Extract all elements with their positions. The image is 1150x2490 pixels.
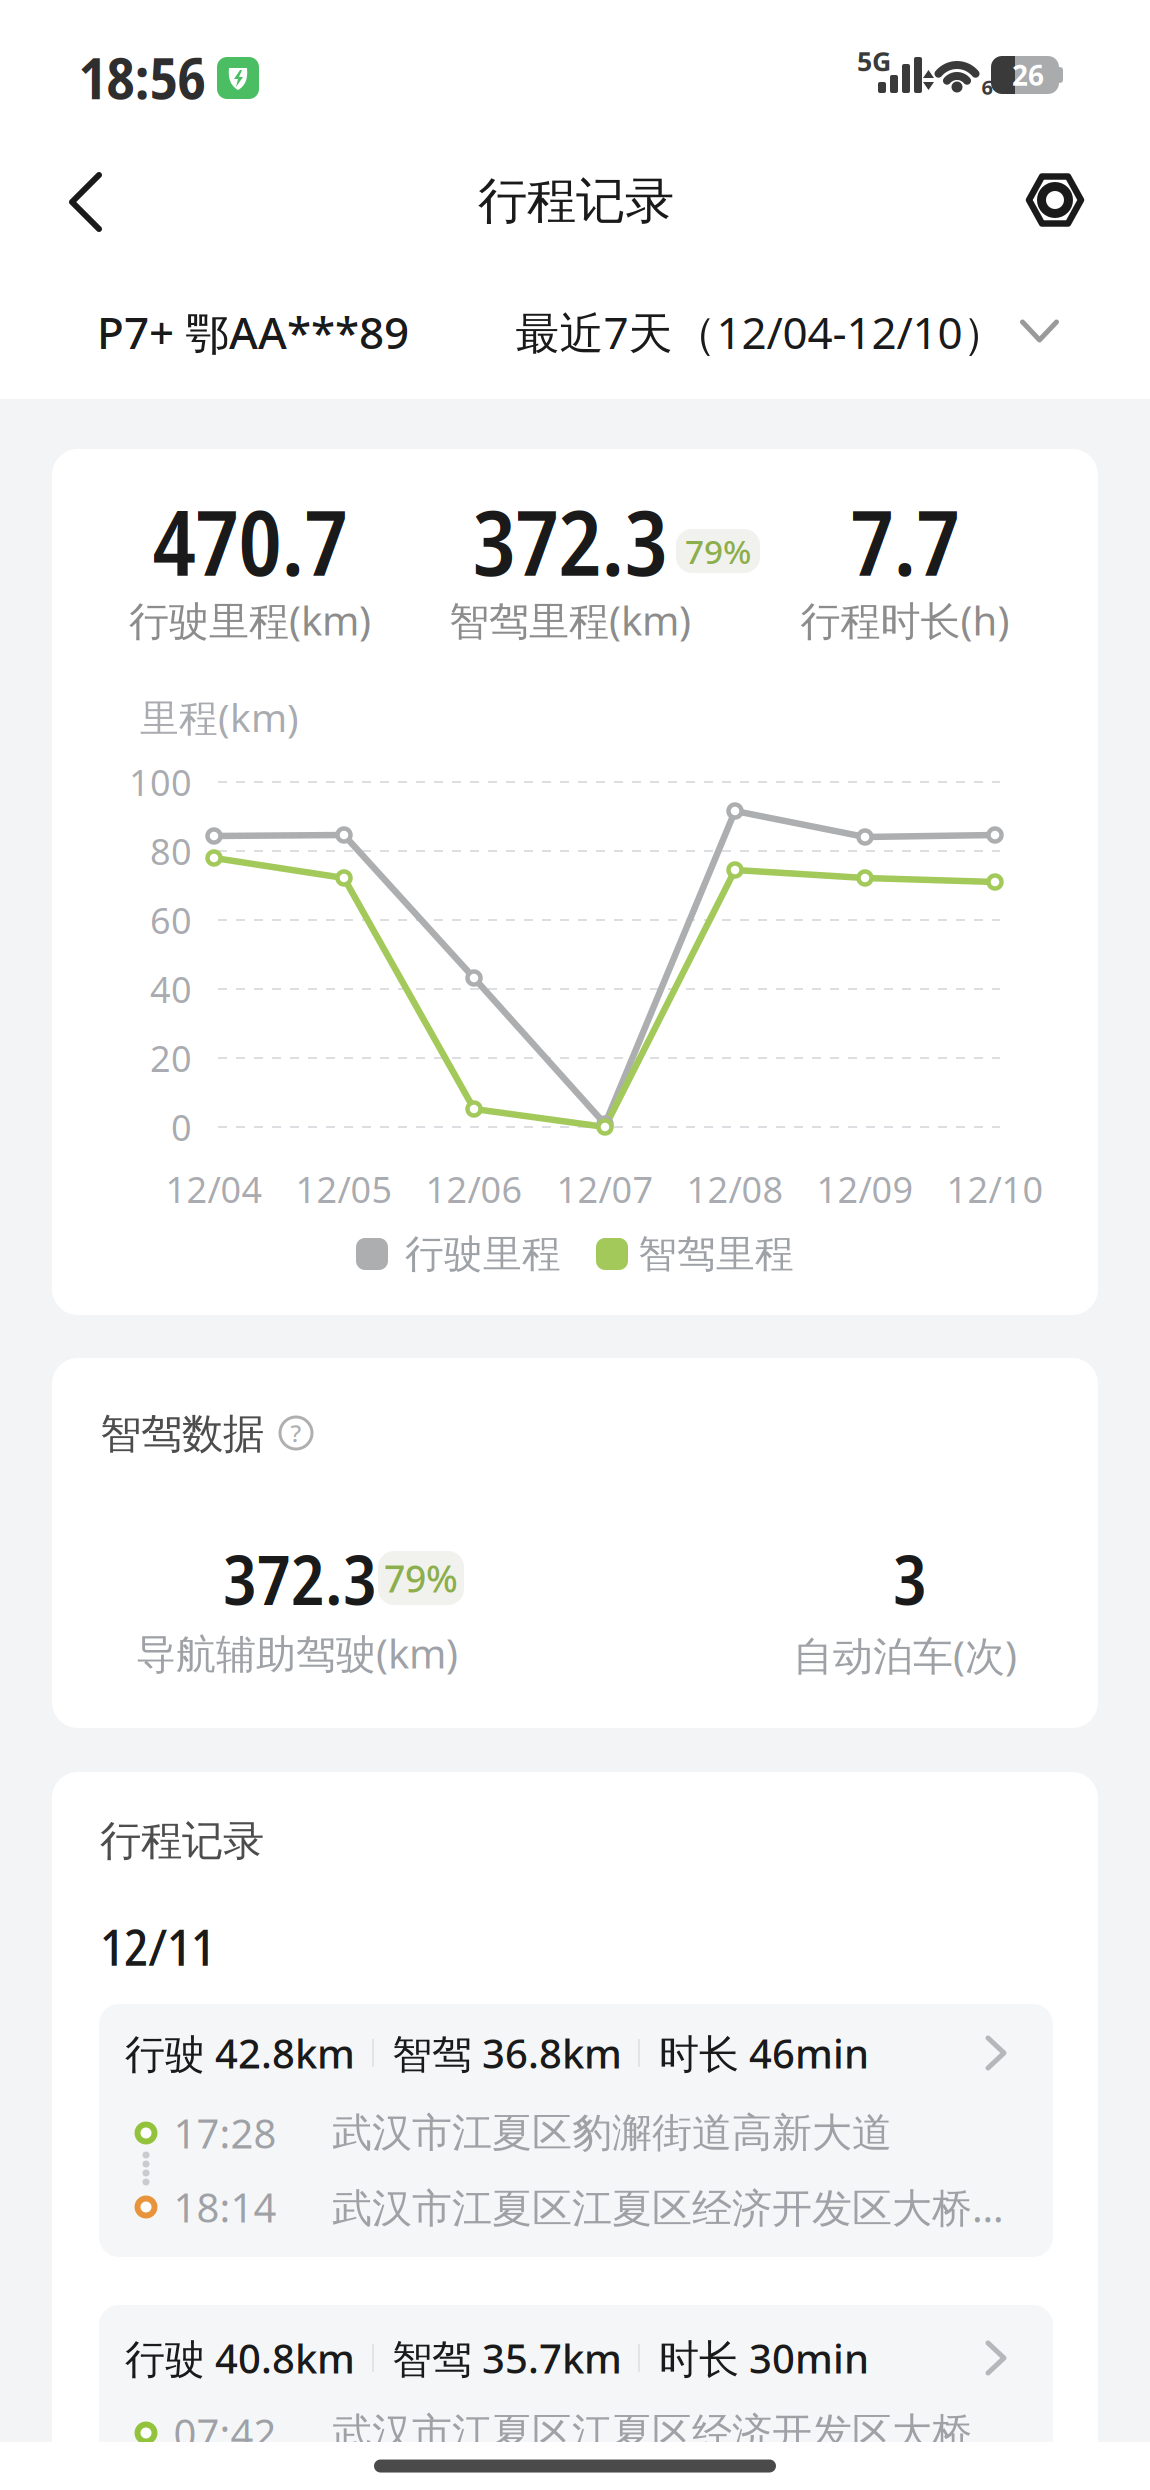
staticText: 100 bbox=[129, 758, 192, 806]
staticText: 12/10 bbox=[946, 1165, 1043, 1213]
staticText: 20 bbox=[150, 1034, 192, 1082]
staticText: 智驾里程(km) bbox=[449, 593, 691, 646]
button[interactable]: 行驶 40.8km bbox=[99, 2305, 1053, 2490]
staticText: 武汉市江夏区豹澥街道高新大道 bbox=[332, 2108, 892, 2157]
staticText: 80 bbox=[150, 827, 192, 875]
staticText: 7.7 bbox=[850, 480, 959, 602]
button[interactable]: P7+ 鄂AA***89 bbox=[97, 303, 557, 361]
staticText: 18:14 bbox=[173, 2180, 276, 2233]
staticText: 3 bbox=[893, 1531, 927, 1625]
staticText: 智驾里程 bbox=[638, 1230, 794, 1278]
staticText: 智驾数据 bbox=[100, 1409, 264, 1459]
staticText: 470.7 bbox=[152, 480, 347, 602]
staticText: 12/07 bbox=[556, 1165, 653, 1213]
staticText: 60 bbox=[150, 896, 192, 944]
staticText: P7+ 鄂AA***89 bbox=[97, 303, 409, 361]
staticText: 12/06 bbox=[425, 1165, 522, 1213]
staticText: 07:42 bbox=[173, 2406, 276, 2459]
button[interactable]: Settings bbox=[1020, 165, 1090, 235]
button[interactable]: Help bbox=[274, 1411, 318, 1455]
staticText: 行驶 40.8km bbox=[125, 2331, 355, 2384]
staticText: 武汉市江夏区江夏区经济开发区大桥… bbox=[332, 2180, 1004, 2233]
staticText: 5G bbox=[857, 43, 891, 79]
staticText: 79% bbox=[685, 529, 751, 573]
staticText: 行驶 42.8km bbox=[125, 2026, 355, 2079]
staticText: 12/09 bbox=[816, 1165, 913, 1213]
staticText: 时长 46min bbox=[659, 2026, 869, 2079]
staticText: 12/04 bbox=[165, 1165, 262, 1213]
staticText: 0 bbox=[171, 1103, 192, 1151]
staticText: 26 bbox=[1012, 56, 1044, 94]
staticText: 17:28 bbox=[173, 2106, 276, 2159]
staticText: 372.3 bbox=[223, 1531, 377, 1625]
staticText: 智驾 35.7km bbox=[392, 2331, 622, 2384]
staticText: 18:56 bbox=[78, 38, 205, 116]
staticText: 行驶里程 bbox=[405, 1230, 561, 1278]
button[interactable]: Back bbox=[58, 167, 118, 237]
staticText: 12/08 bbox=[686, 1165, 783, 1213]
staticText: 6 bbox=[981, 74, 992, 100]
staticText: 智驾 36.8km bbox=[392, 2026, 622, 2079]
staticText: 导航辅助驾驶(km) bbox=[136, 1626, 458, 1679]
staticText: 时长 30min bbox=[659, 2331, 869, 2384]
staticText: 行程记录 bbox=[478, 171, 674, 231]
staticText: 最近7天（12/04-12/10） bbox=[515, 303, 1006, 361]
staticText: 行程记录 bbox=[100, 1816, 264, 1866]
staticText: ? bbox=[290, 1417, 301, 1449]
staticText: 79% bbox=[384, 1553, 458, 1603]
button[interactable]: 最近7天（12/04-12/10） bbox=[515, 303, 1058, 361]
staticText: 里程(km) bbox=[140, 691, 299, 743]
staticText: 12/11 bbox=[100, 1911, 215, 1980]
staticText: 372.3 bbox=[472, 480, 667, 602]
staticText: 行程时长(h) bbox=[800, 593, 1009, 646]
staticText: 武汉市江夏区江夏区经济开发区大桥 bbox=[332, 2408, 972, 2457]
staticText: 12/05 bbox=[295, 1165, 392, 1213]
staticText: 自动泊车(次) bbox=[793, 1628, 1017, 1681]
staticText: 40 bbox=[150, 965, 192, 1013]
button[interactable]: 行驶 42.8km bbox=[99, 2004, 1053, 2257]
staticText: 行驶里程(km) bbox=[129, 593, 371, 646]
